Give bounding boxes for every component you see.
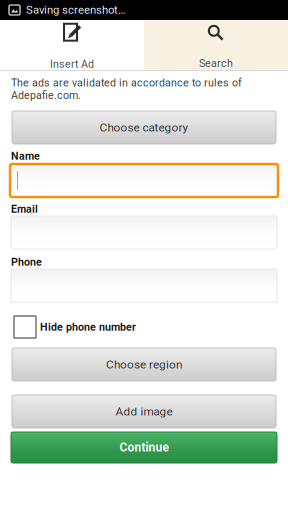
staticText: Email — [11, 203, 38, 215]
button[interactable]: Insert Ad — [0, 20, 144, 70]
button[interactable]: Search — [144, 20, 288, 70]
staticText: Phone — [11, 256, 42, 268]
staticText: Choose category — [99, 121, 188, 134]
staticText: Name — [11, 150, 40, 162]
staticText: Choose region — [106, 358, 182, 371]
staticText: Continue — [119, 440, 168, 455]
staticText: Saving screenshot… — [26, 3, 126, 17]
button[interactable]: Choose category — [12, 111, 276, 144]
staticText: Search — [199, 57, 233, 69]
button[interactable]: Add image — [12, 395, 276, 428]
button[interactable]: Hide phone number — [11, 316, 277, 338]
button[interactable]: Choose region — [12, 348, 276, 381]
staticText: The ads are validated in accordance to r… — [11, 76, 242, 101]
button[interactable]: Continue — [11, 432, 277, 463]
staticText: Insert Ad — [50, 58, 94, 70]
staticText: Add image — [115, 405, 172, 418]
staticText: Hide phone number — [40, 321, 136, 333]
